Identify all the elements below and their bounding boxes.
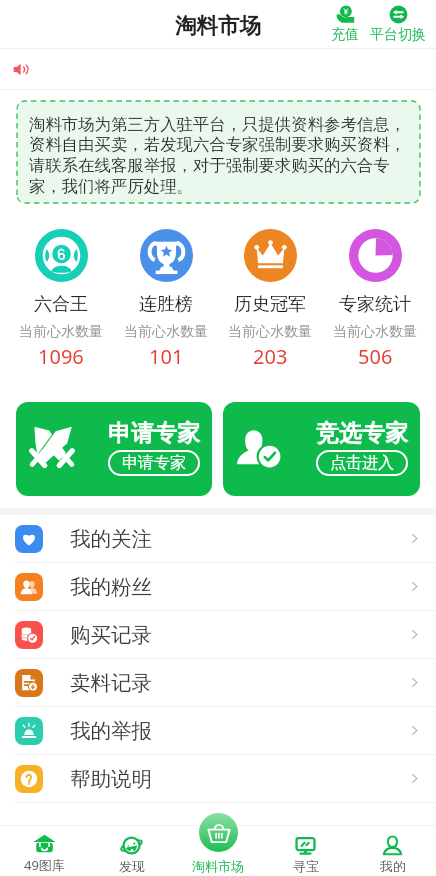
staticText: 竞选专家 [316, 419, 408, 448]
staticText: 1096 [38, 343, 84, 370]
staticText: 卖料记录 [70, 670, 152, 696]
staticText: 平台切换 [370, 26, 426, 44]
staticText: 506 [358, 343, 393, 370]
staticText: 淘料市场 [175, 12, 261, 39]
staticText: 专家统计 [339, 293, 411, 316]
staticText: 我的 [380, 858, 406, 874]
button[interactable]: 49图库 [0, 832, 88, 876]
staticText: 当前心水数量 [124, 323, 208, 341]
staticText: 我的关注 [70, 526, 152, 552]
button[interactable]: 竞选专家 [223, 402, 420, 496]
staticText: 203 [253, 343, 288, 370]
button[interactable]: 连胜榜 [122, 229, 210, 370]
button[interactable]: 申请专家 [16, 402, 212, 496]
staticText: 购买记录 [70, 622, 152, 648]
button[interactable]: 充值 [330, 5, 360, 44]
staticText: 我的举报 [70, 718, 152, 744]
button[interactable]: 六合王 [17, 229, 105, 370]
staticText: 我的粉丝 [70, 574, 152, 600]
button[interactable]: 发现 [88, 834, 175, 876]
button[interactable]: 我的 [349, 834, 436, 876]
button[interactable]: 我的关注 [0, 515, 436, 562]
staticText: 点击进入 [330, 453, 394, 473]
button[interactable]: 历史冠军 [226, 229, 314, 370]
staticText: 101 [149, 343, 184, 370]
staticText: 申请专家 [108, 419, 200, 448]
staticText: 淘料市场为第三方入驻平台，只提供资料参考信息，资料自由买卖，若发现六合专家强制要… [29, 114, 411, 197]
staticText: 当前心水数量 [228, 323, 312, 341]
button[interactable]: 平台切换 [369, 5, 427, 44]
button[interactable]: 我的举报 [0, 707, 436, 754]
staticText: 充值 [331, 26, 359, 44]
staticText: 发现 [119, 858, 145, 874]
staticText: 连胜榜 [139, 293, 193, 316]
button[interactable]: 淘料市场 [192, 810, 244, 876]
staticText: 当前心水数量 [19, 323, 103, 341]
staticText: 六合王 [34, 293, 88, 316]
button[interactable]: 寻宝 [262, 834, 349, 876]
staticText: 寻宝 [293, 858, 319, 874]
staticText: 历史冠军 [234, 293, 306, 316]
button[interactable]: 购买记录 [0, 611, 436, 658]
staticText: 49图库 [24, 856, 65, 874]
button[interactable]: 我的粉丝 [0, 563, 436, 610]
staticText: 淘料市场 [192, 858, 244, 874]
staticText: 帮助说明 [70, 766, 152, 792]
button[interactable]: 帮助说明 [0, 755, 436, 802]
button[interactable]: 卖料记录 [0, 659, 436, 706]
staticText: 申请专家 [122, 453, 186, 473]
staticText: 当前心水数量 [333, 323, 417, 341]
button[interactable]: 专家统计 [331, 229, 419, 370]
